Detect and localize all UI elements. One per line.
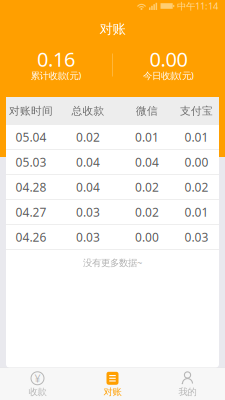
- staticText: 0.01: [184, 129, 208, 145]
- staticText: 04.27: [15, 204, 46, 220]
- staticText: 0.02: [135, 179, 159, 195]
- staticText: 今日收款(元): [143, 69, 194, 82]
- staticText: 对账: [103, 386, 121, 398]
- staticText: 04.26: [15, 229, 46, 245]
- staticText: 收款: [28, 386, 46, 398]
- staticText: 微信: [136, 104, 158, 117]
- staticText: 中午11:14: [177, 0, 218, 12]
- staticText: 0.01: [184, 204, 208, 220]
- staticText: 0.04: [76, 154, 100, 170]
- staticText: 05.04: [15, 129, 46, 145]
- staticText: ¥: [34, 371, 40, 385]
- staticText: 0.02: [76, 129, 100, 145]
- staticText: 0.03: [184, 229, 208, 245]
- staticText: 没有更多数据~: [83, 256, 142, 269]
- button[interactable]: 对账: [75, 368, 150, 400]
- staticText: 04.28: [15, 179, 46, 195]
- staticText: 0.16: [37, 46, 75, 72]
- staticText: 0.01: [135, 129, 159, 145]
- staticText: 我的: [178, 386, 196, 398]
- staticText: 对账时间: [9, 104, 53, 117]
- staticText: 累计收款(元): [30, 69, 81, 82]
- staticText: 0.02: [184, 179, 208, 195]
- staticText: 0.00: [149, 46, 187, 72]
- staticText: 0.00: [135, 229, 159, 245]
- button[interactable]: 我的: [150, 368, 225, 400]
- staticText: 支付宝: [180, 104, 213, 117]
- staticText: 0.03: [76, 229, 100, 245]
- staticText: 0.04: [76, 179, 100, 195]
- staticText: 总收款: [71, 104, 104, 117]
- staticText: 对账: [99, 21, 125, 37]
- staticText: 0.04: [135, 154, 159, 170]
- staticText: 0.03: [76, 204, 100, 220]
- button[interactable]: ¥: [0, 368, 75, 400]
- staticText: 05.03: [15, 154, 46, 170]
- staticText: 0.00: [184, 154, 208, 170]
- staticText: 0.02: [135, 204, 159, 220]
